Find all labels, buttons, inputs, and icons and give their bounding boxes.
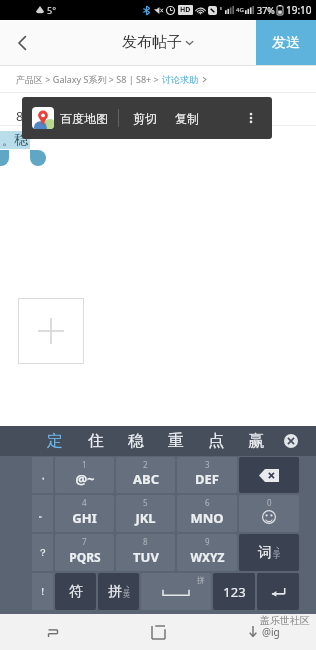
staticText: 19:10 <box>286 3 312 17</box>
button[interactable]: 2 <box>116 457 175 493</box>
button[interactable]: Hide keyboard <box>211 614 316 650</box>
button[interactable]: 复制 <box>175 111 199 126</box>
staticText: 3 <box>205 459 210 470</box>
staticText: 5° <box>47 4 57 16</box>
button[interactable]: 6 <box>177 495 237 532</box>
staticText: 发送 <box>272 34 300 52</box>
staticText: @~ <box>75 470 95 488</box>
button[interactable]: 重 <box>156 426 196 456</box>
button[interactable]: ！ <box>32 573 53 610</box>
staticText: 7 <box>82 536 87 547</box>
staticText: 盖乐世社区 <box>260 614 310 627</box>
button[interactable]: 住 <box>75 426 116 456</box>
staticText: 2 <box>143 459 148 470</box>
button[interactable]: 点 <box>196 426 236 456</box>
button[interactable]: 。 <box>32 495 53 532</box>
staticText: 住 <box>88 431 104 451</box>
staticText: 6 <box>205 497 210 508</box>
staticText: 1 <box>82 459 87 470</box>
staticText: 。 <box>38 507 48 520</box>
staticText: 123 <box>223 583 246 601</box>
staticText: ？ <box>38 546 48 559</box>
button[interactable]: 稳 <box>116 426 156 456</box>
button[interactable]: 符 <box>55 573 96 610</box>
staticText: ᴱ <box>220 6 223 14</box>
button[interactable]: 词 <box>239 534 299 571</box>
staticText: 5 <box>143 497 148 508</box>
button[interactable]: Close keyboard suggestions <box>276 426 306 456</box>
button[interactable]: 8 <box>116 534 175 571</box>
staticText: 9 <box>205 536 210 547</box>
staticText: @ig <box>262 625 280 639</box>
staticText: 稳 <box>128 431 144 451</box>
staticText: GHI <box>72 509 97 527</box>
button[interactable]: 发布帖子 <box>122 33 194 52</box>
button[interactable]: 赢 <box>236 426 276 456</box>
button[interactable]: More options <box>240 107 262 129</box>
button[interactable]: 1 <box>55 457 114 493</box>
button[interactable]: Backspace <box>239 457 299 493</box>
staticText: 赢 <box>248 431 264 451</box>
staticText: 37% <box>257 4 275 16</box>
button[interactable]: 发送 <box>256 20 316 65</box>
staticText: 百度地图 <box>60 111 108 126</box>
staticText: 产品区 > Galaxy S系列 > S8 | S8+ > <box>16 73 162 85</box>
staticText: ！ <box>38 585 48 598</box>
button[interactable]: Space <box>141 573 211 610</box>
button[interactable]: 讨论求助 <box>162 74 198 85</box>
staticText: 符 <box>69 583 83 601</box>
button[interactable]: Enter <box>257 573 299 610</box>
button[interactable]: 5 <box>116 495 175 532</box>
staticText: 4 <box>82 497 87 508</box>
button[interactable]: Home <box>106 614 211 650</box>
button[interactable]: Recent apps <box>0 614 106 650</box>
button[interactable]: 剪切 <box>133 111 157 126</box>
staticText: 8 <box>16 107 24 125</box>
staticText: ， <box>38 469 48 482</box>
staticText: ABC <box>133 470 159 488</box>
staticText: 8 <box>143 536 148 547</box>
staticText: 英 <box>123 590 130 599</box>
button[interactable]: 定 <box>34 426 75 456</box>
staticText: WXYZ <box>190 549 225 565</box>
staticText: HD <box>180 5 191 15</box>
button[interactable]: ？ <box>32 534 53 571</box>
staticText: TUV <box>133 548 159 566</box>
button[interactable]: Add image <box>18 298 84 364</box>
staticText: 发布帖子 <box>122 33 182 52</box>
staticText: DEF <box>195 470 219 488</box>
button[interactable]: ， <box>32 457 53 493</box>
staticText: 字 <box>273 551 280 560</box>
staticText: 定 <box>47 431 63 451</box>
staticText: 。 <box>2 133 14 148</box>
staticText: 重 <box>168 431 184 451</box>
button[interactable]: Back <box>0 20 45 65</box>
button[interactable]: 拼 <box>98 573 139 610</box>
button[interactable]: 3 <box>177 457 237 493</box>
staticText: 词 <box>258 544 272 562</box>
staticText: 4G <box>236 6 244 14</box>
button[interactable]: Emoji <box>239 495 299 532</box>
button[interactable]: 4 <box>55 495 114 532</box>
staticText: 拼 <box>108 583 122 601</box>
staticText: PQRS <box>69 549 101 565</box>
staticText: 复制 <box>175 111 199 126</box>
button[interactable]: 123 <box>213 573 255 610</box>
button[interactable]: 百度地图 <box>32 107 108 129</box>
button[interactable]: 9 <box>177 534 237 571</box>
staticText: 点 <box>208 431 224 451</box>
button[interactable]: 7 <box>55 534 114 571</box>
staticText: 0 <box>267 497 272 508</box>
staticText: 稳 <box>14 131 28 149</box>
staticText: 拼 <box>197 575 205 585</box>
staticText: MNO <box>190 509 224 527</box>
staticText: JKL <box>135 509 156 527</box>
staticText: 剪切 <box>133 111 157 126</box>
